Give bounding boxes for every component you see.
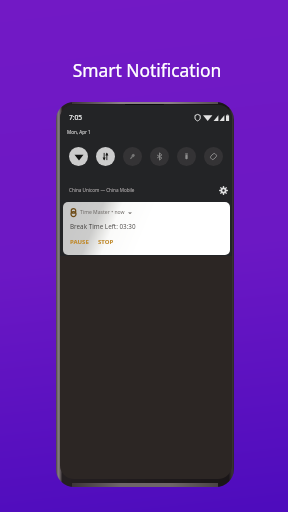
staticText: Smart Notification [3,58,288,82]
staticText: STOP [98,238,114,246]
staticText: PAUSE [70,238,89,246]
button[interactable]: Wi-Fi [69,147,88,166]
staticText: China Unicom — China Mobile [69,187,135,193]
button[interactable]: Mobile data [96,147,115,166]
staticText: Mon, Apr 1 [67,129,91,135]
staticText: 7:05 [69,113,83,122]
staticText: Time Master • now [80,209,125,216]
staticText: Break Time Left: 03:30 [70,222,136,231]
button[interactable]: Bluetooth [150,147,169,166]
button[interactable]: Flashlight [123,147,142,166]
button[interactable]: Time Master • now [63,202,230,255]
button[interactable]: PAUSE [70,238,89,246]
button[interactable]: Torch [177,147,196,166]
button[interactable]: Settings [218,185,229,196]
button[interactable]: Auto rotate [204,147,223,166]
button[interactable]: STOP [98,238,114,246]
